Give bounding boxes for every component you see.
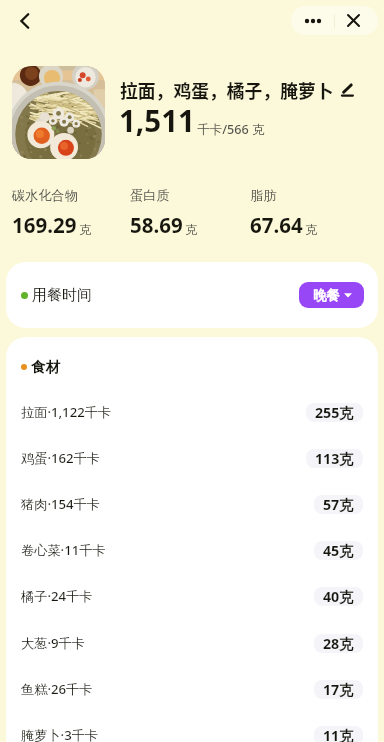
- staticText: 45克: [323, 541, 354, 560]
- button[interactable]: 鱼糕·26千卡: [6, 666, 378, 712]
- staticText: 用餐时间: [32, 286, 92, 305]
- button[interactable]: More options: [291, 6, 334, 35]
- staticText: 67.64: [250, 211, 303, 239]
- staticText: 58.69: [130, 211, 183, 239]
- staticText: 克: [79, 222, 91, 237]
- staticText: 拉面·1,122千卡: [21, 403, 112, 421]
- button[interactable]: 鸡蛋·162千卡: [6, 435, 378, 481]
- button[interactable]: 晚餐: [299, 282, 364, 308]
- staticText: 40克: [323, 587, 354, 606]
- staticText: 17克: [323, 680, 354, 699]
- staticText: 169.29: [12, 211, 77, 239]
- staticText: 卷心菜·11千卡: [21, 541, 106, 559]
- button[interactable]: 橘子·24千卡: [6, 573, 378, 619]
- staticText: 57克: [323, 495, 354, 514]
- staticText: 橘子·24千卡: [21, 587, 93, 605]
- staticText: 拉面，鸡蛋，橘子，腌萝卜: [120, 77, 334, 103]
- staticText: 食材: [31, 358, 60, 376]
- staticText: 11克: [323, 726, 354, 742]
- button[interactable]: 腌萝卜·3千卡: [6, 712, 378, 742]
- staticText: 克: [185, 222, 197, 237]
- button[interactable]: Edit name: [339, 82, 355, 98]
- staticText: 蛋白质: [130, 187, 170, 204]
- staticText: 鸡蛋·162千卡: [21, 449, 100, 467]
- staticText: 255克: [315, 403, 354, 422]
- staticText: 碳水化合物: [12, 187, 78, 204]
- button[interactable]: Meal photo: [12, 66, 105, 159]
- staticText: 113克: [315, 449, 354, 468]
- staticText: 晚餐: [313, 287, 340, 304]
- button[interactable]: 拉面·1,122千卡: [6, 389, 378, 435]
- staticText: 大葱·9千卡: [21, 634, 85, 652]
- staticText: 克: [305, 222, 317, 237]
- staticText: 脂肪: [250, 187, 277, 204]
- staticText: 28克: [323, 634, 354, 653]
- button[interactable]: Close: [335, 6, 372, 35]
- staticText: 千卡/566 克: [197, 121, 265, 138]
- staticText: 猪肉·154千卡: [21, 495, 100, 513]
- staticText: 腌萝卜·3千卡: [21, 726, 99, 742]
- button[interactable]: 猪肉·154千卡: [6, 481, 378, 527]
- button[interactable]: 卷心菜·11千卡: [6, 527, 378, 573]
- button[interactable]: Back: [9, 5, 41, 37]
- staticText: 1,511: [119, 100, 195, 140]
- button[interactable]: 大葱·9千卡: [6, 620, 378, 666]
- staticText: 鱼糕·26千卡: [21, 680, 93, 698]
